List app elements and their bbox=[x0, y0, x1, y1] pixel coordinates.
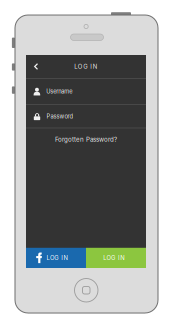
button[interactable]: Password bbox=[26, 105, 146, 128]
button[interactable]: LOG IN bbox=[26, 248, 86, 268]
button[interactable]: Forgotten Password? bbox=[26, 128, 146, 150]
button[interactable]: LOG IN bbox=[86, 248, 146, 268]
button[interactable]: Back bbox=[34, 55, 50, 78]
staticText: Forgotten Password? bbox=[55, 136, 117, 143]
staticText: LOG IN bbox=[46, 254, 68, 261]
staticText: LOG IN bbox=[103, 254, 124, 261]
staticText: Password bbox=[47, 113, 74, 120]
button[interactable]: Username bbox=[26, 79, 146, 104]
staticText: Username bbox=[46, 88, 72, 95]
staticText: LOG IN bbox=[74, 63, 98, 70]
